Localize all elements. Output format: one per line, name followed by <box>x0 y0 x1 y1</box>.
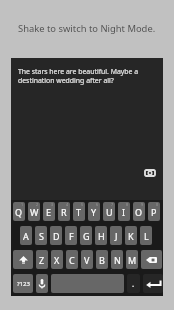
staticText: X <box>54 254 60 266</box>
button[interactable]: T <box>73 202 85 221</box>
button[interactable]: Camera <box>142 166 158 180</box>
button[interactable]: Backspace <box>141 250 162 269</box>
button[interactable]: P <box>148 202 160 221</box>
button[interactable]: . <box>127 274 140 293</box>
button[interactable]: Z <box>36 250 48 269</box>
staticText: S <box>39 230 44 242</box>
staticText: D <box>53 230 60 242</box>
button[interactable]: B <box>96 250 108 269</box>
button[interactable]: K <box>125 226 137 245</box>
staticText: O <box>135 206 143 218</box>
staticText: Shake to switch to Night Mode. <box>18 22 156 35</box>
button[interactable]: R <box>58 202 70 221</box>
staticText: Q <box>15 206 23 218</box>
button[interactable]: Y <box>88 202 100 221</box>
staticText: 3 <box>51 202 54 207</box>
staticText: G <box>83 230 90 242</box>
staticText: 1 <box>21 202 24 207</box>
staticText: P <box>151 206 157 218</box>
staticText: ?123 <box>17 280 30 288</box>
button[interactable]: O <box>133 202 145 221</box>
button[interactable]: I <box>118 202 130 221</box>
button[interactable]: Shift <box>13 250 33 269</box>
button[interactable]: D <box>50 226 62 245</box>
staticText: . <box>132 278 135 289</box>
staticText: E <box>46 206 52 218</box>
staticText: Y <box>91 206 97 218</box>
button[interactable]: J <box>110 226 122 245</box>
staticText: K <box>128 230 134 242</box>
staticText: J <box>115 230 118 242</box>
staticText: 7 <box>111 202 114 207</box>
button[interactable]: Voice input <box>36 274 48 293</box>
staticText: 0 <box>156 202 159 207</box>
staticText: The stars here are beautiful. Maybe a de… <box>18 67 139 85</box>
staticText: 2 <box>36 202 39 207</box>
button[interactable]: S <box>35 226 47 245</box>
button[interactable]: E <box>43 202 55 221</box>
button[interactable]: N <box>111 250 123 269</box>
staticText: B <box>99 254 105 266</box>
staticText: U <box>106 206 113 218</box>
button[interactable]: H <box>95 226 107 245</box>
staticText: W <box>30 206 39 218</box>
staticText: 4 <box>66 202 69 207</box>
staticText: I <box>122 206 126 218</box>
button[interactable]: F <box>65 226 77 245</box>
staticText: 9 <box>141 202 144 207</box>
button[interactable]: U <box>103 202 115 221</box>
button[interactable]: W <box>28 202 40 221</box>
staticText: T <box>76 206 82 218</box>
button[interactable]: X <box>51 250 63 269</box>
button[interactable]: M <box>126 250 138 269</box>
button[interactable]: ?123 <box>13 274 33 293</box>
staticText: C <box>69 254 75 266</box>
staticText: L <box>144 230 149 242</box>
button[interactable]: Enter <box>143 274 163 293</box>
staticText: Z <box>39 254 45 266</box>
staticText: R <box>61 206 67 218</box>
staticText: V <box>84 254 90 266</box>
staticText: F <box>69 230 74 242</box>
button[interactable]: A <box>20 226 32 245</box>
button[interactable]: C <box>66 250 78 269</box>
staticText: 8 <box>126 202 129 207</box>
button[interactable]: V <box>81 250 93 269</box>
staticText: H <box>98 230 105 242</box>
staticText: A <box>23 230 29 242</box>
staticText: N <box>114 254 121 266</box>
staticText: 5 <box>81 202 84 207</box>
button[interactable]: Q <box>13 202 25 221</box>
staticText: M <box>128 254 137 266</box>
button[interactable]: G <box>80 226 92 245</box>
button[interactable]: L <box>140 226 152 245</box>
staticText: 6 <box>96 202 99 207</box>
